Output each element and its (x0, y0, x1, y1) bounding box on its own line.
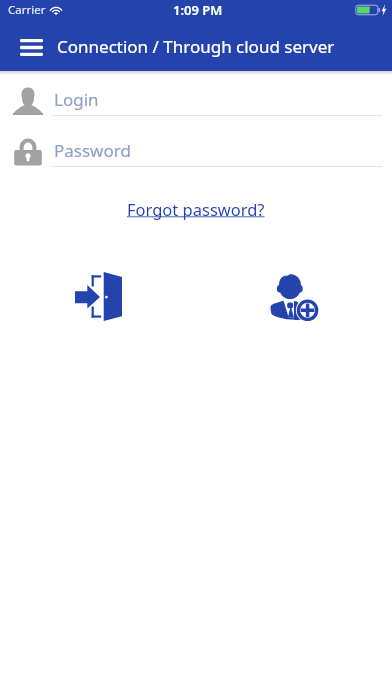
button[interactable]: Sign in (66, 264, 130, 328)
staticText: Password (54, 139, 131, 162)
button[interactable]: Password (51, 130, 382, 167)
staticText: Login (54, 88, 99, 111)
button[interactable]: Login (51, 79, 382, 116)
staticText: 1:09 PM (173, 1, 223, 19)
button[interactable]: Open navigation menu (14, 30, 48, 64)
staticText: Carrier (8, 2, 46, 18)
staticText: Connection / Through cloud server (57, 35, 335, 58)
button[interactable]: Forgot password? (119, 195, 273, 223)
button[interactable]: Register new account (262, 264, 326, 328)
